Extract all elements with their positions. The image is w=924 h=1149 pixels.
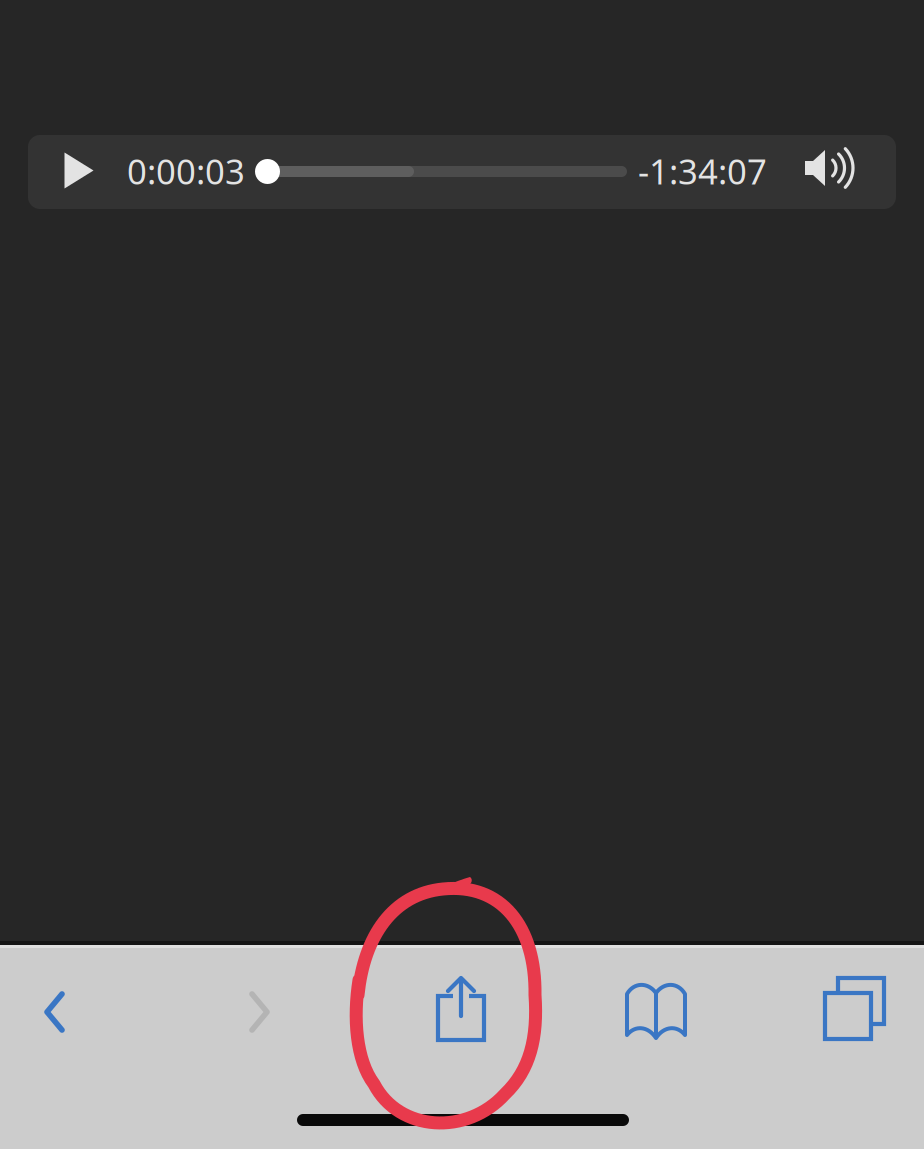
button[interactable]: Play xyxy=(28,135,128,209)
button[interactable]: Volume xyxy=(796,135,896,209)
button[interactable]: Tabs xyxy=(802,967,908,1057)
button[interactable]: Share xyxy=(408,967,514,1057)
button[interactable]: Bookmarks xyxy=(603,967,709,1057)
staticText: -1:34:07 xyxy=(638,148,767,194)
staticText: 0:00:03 xyxy=(127,148,245,194)
button[interactable]: Back xyxy=(0,967,106,1057)
button[interactable]: Forward xyxy=(206,967,312,1057)
